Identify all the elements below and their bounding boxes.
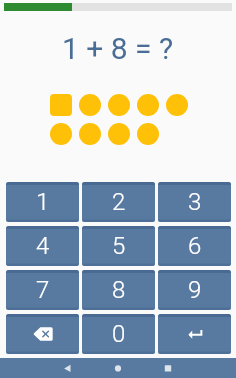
staticText: 8 — [112, 276, 126, 304]
button[interactable]: 1 — [6, 182, 79, 222]
button[interactable]: 8 — [82, 270, 155, 310]
staticText: 6 — [188, 232, 202, 260]
staticText: 0 — [112, 320, 126, 348]
button[interactable]: 0 — [82, 314, 155, 354]
staticText: 9 — [188, 276, 202, 304]
other: Backspace — [30, 321, 56, 347]
button[interactable]: 3 — [158, 182, 231, 222]
staticText: 1 + 8 = ? — [62, 31, 174, 66]
button[interactable]: 6 — [158, 226, 231, 266]
staticText: 3 — [188, 188, 202, 216]
staticText: 4 — [36, 232, 50, 260]
button[interactable]: 7 — [6, 270, 79, 310]
button[interactable]: 2 — [82, 182, 155, 222]
staticText: 5 — [112, 232, 126, 260]
button[interactable]: Enter — [158, 314, 231, 354]
staticText: 1 — [36, 188, 50, 216]
other: Enter — [182, 321, 208, 347]
staticText: 2 — [112, 188, 126, 216]
button[interactable]: 5 — [82, 226, 155, 266]
button[interactable]: 9 — [158, 270, 231, 310]
other: System navigation — [0, 358, 236, 378]
button[interactable]: 4 — [6, 226, 79, 266]
staticText: 7 — [36, 276, 50, 304]
button[interactable]: Backspace — [6, 314, 79, 354]
